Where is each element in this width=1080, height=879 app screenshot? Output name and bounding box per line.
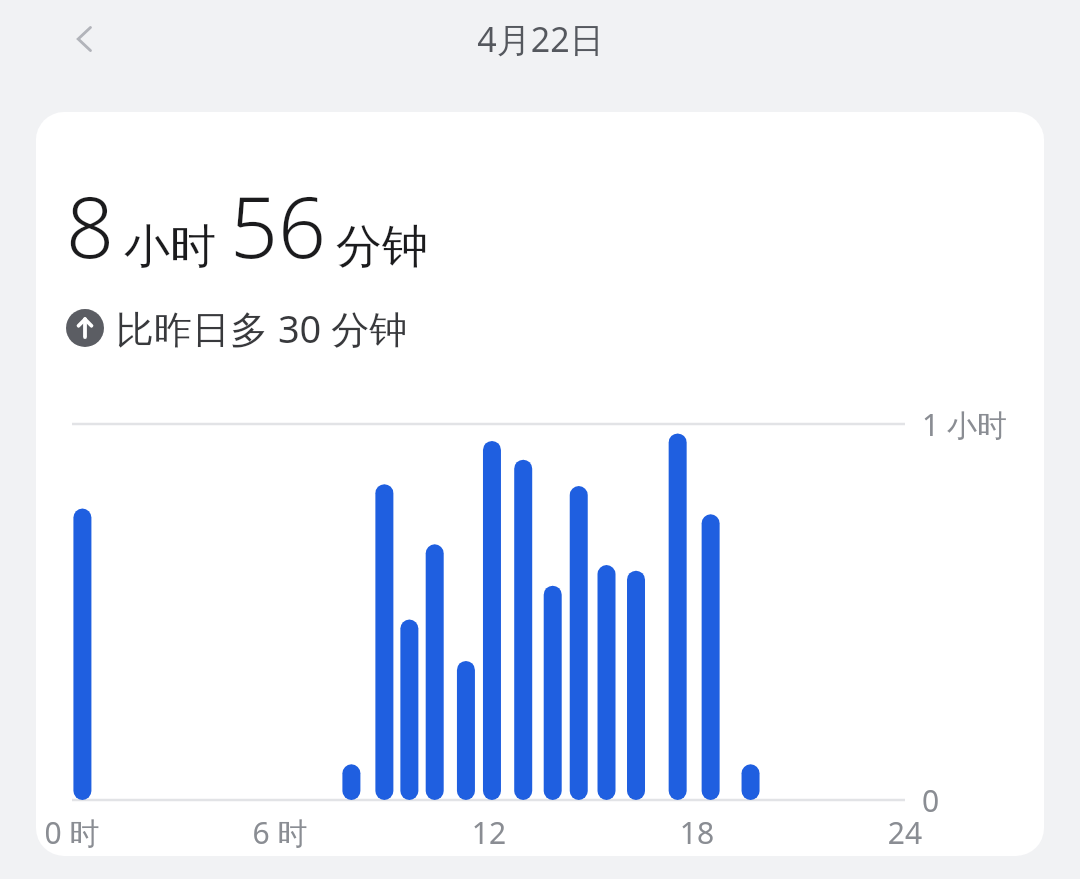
staticText: 24 时 <box>870 812 940 856</box>
staticText: 小时 <box>124 218 216 276</box>
staticText: 4月22日 <box>477 16 604 62</box>
staticText: 12 时 <box>454 812 524 856</box>
staticText: 0 时 <box>37 812 107 853</box>
staticText: 1 小时 <box>922 404 1007 445</box>
staticText: 分钟 <box>336 218 428 276</box>
staticText: 18 时 <box>662 812 732 856</box>
staticText: 56 <box>230 168 326 282</box>
staticText: 0 <box>922 780 940 821</box>
staticText: 8 <box>66 168 114 282</box>
staticText: 比昨日多 30 分钟 <box>116 302 408 354</box>
button[interactable]: Back <box>46 0 124 78</box>
staticText: 6 时 <box>245 812 315 853</box>
button[interactable]: 8 <box>36 112 1044 856</box>
